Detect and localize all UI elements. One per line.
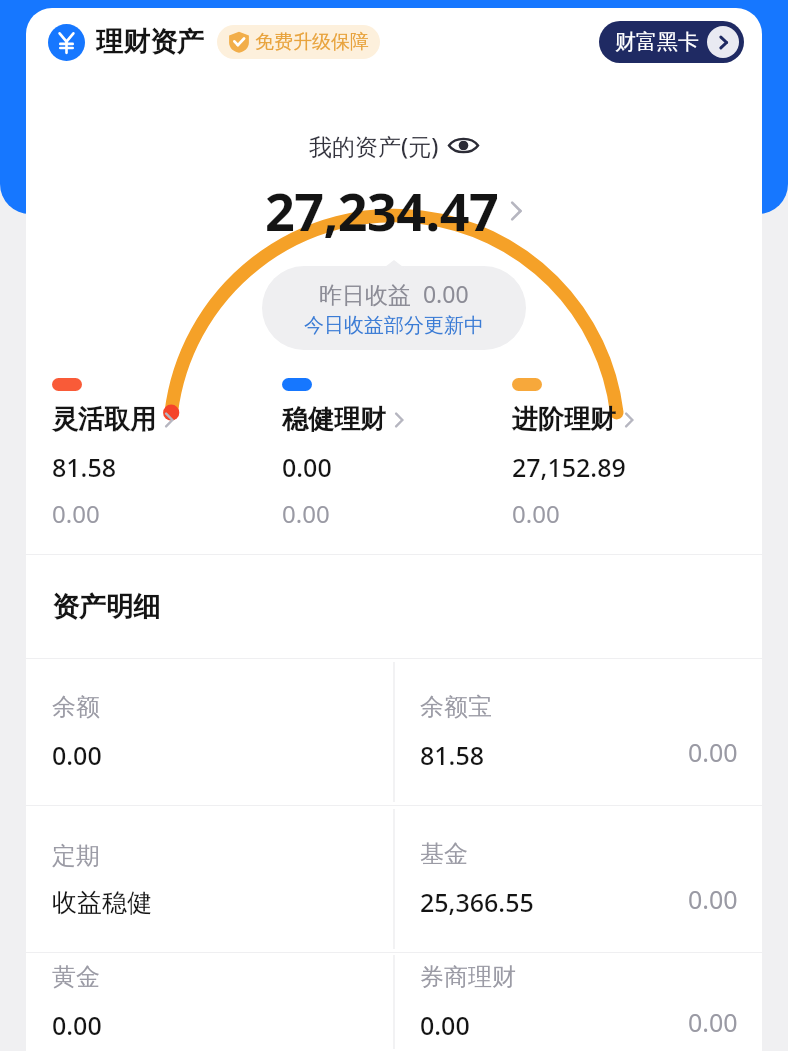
button[interactable]: 稳健理财 [282,378,512,530]
staticText: 定期 [52,841,100,871]
staticText: 理财资产 [96,25,204,59]
staticText: 黄金 [52,962,100,992]
staticText: 稳健理财 [282,403,386,436]
staticText: 81.58 [420,738,485,772]
staticText: 27,152.89 [512,450,626,484]
button[interactable]: 券商理财 [394,953,762,1051]
staticText: 进阶理财 [512,403,616,436]
button[interactable]: 定期 [26,806,394,952]
staticText: 0.00 [688,735,738,769]
button[interactable]: 财富黑卡 [599,21,744,63]
staticText: 券商理财 [420,962,516,992]
button[interactable]: 昨日收益 0.00 [262,266,526,350]
staticText: 灵活取用 [52,403,156,436]
staticText: 27,234.47 [265,175,499,246]
staticText: 0.00 [420,1008,470,1042]
button[interactable]: 灵活取用 [52,378,282,530]
button[interactable]: 黄金 [26,953,394,1051]
staticText: 财富黑卡 [615,29,699,55]
staticText: 81.58 [52,450,117,484]
staticText: 余额宝 [420,692,492,722]
staticText: 0.00 [52,497,100,530]
button[interactable]: 基金 [394,806,762,952]
staticText: 昨日收益 0.00 [319,278,469,309]
staticText: 收益稳健 [52,887,152,918]
staticText: 0.00 [512,497,560,530]
staticText: 0.00 [282,450,332,484]
staticText: 0.00 [282,497,330,530]
staticText: 0.00 [688,1005,738,1039]
staticText: 我的资产(元) [309,130,439,161]
staticText: 资产明细 [52,590,160,624]
staticText: 0.00 [52,738,102,772]
staticText: 今日收益部分更新中 [304,313,484,338]
staticText: 免费升级保障 [255,30,369,54]
button[interactable]: 免费升级保障 [217,25,380,59]
staticText: 基金 [420,839,468,869]
staticText: 0.00 [52,1008,102,1042]
button[interactable]: 余额 [26,659,394,805]
staticText: 25,366.55 [420,885,534,919]
staticText: 0.00 [688,882,738,916]
button[interactable]: 余额宝 [394,659,762,805]
button[interactable]: 27,234.47 [265,175,524,246]
button[interactable]: 我的资产(元) [303,128,485,163]
other: Toggle balance visibility [448,136,479,155]
staticText: 余额 [52,692,100,722]
button[interactable]: 进阶理财 [512,378,742,530]
